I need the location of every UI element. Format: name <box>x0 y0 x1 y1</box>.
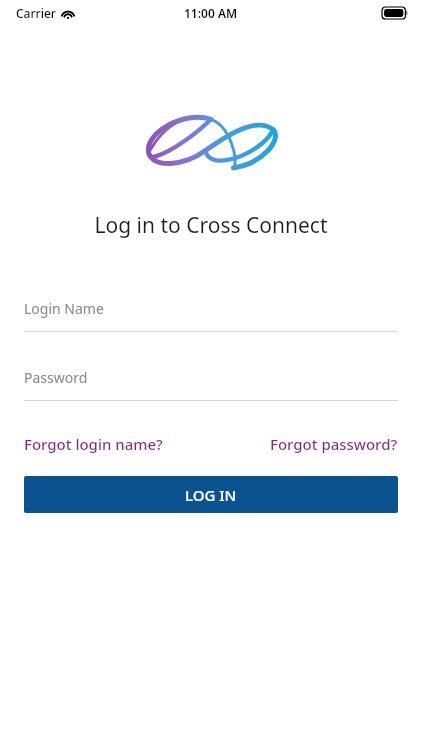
button[interactable]: LOG IN <box>24 476 398 513</box>
staticText: Login Name <box>24 299 104 318</box>
staticText: Forgot login name? <box>24 434 163 454</box>
staticText: Carrier <box>16 5 56 21</box>
staticText: LOG IN <box>185 485 237 505</box>
staticText: Password <box>24 368 88 387</box>
button[interactable]: Login Name <box>24 299 398 332</box>
staticText: 11:00 AM <box>184 5 238 21</box>
button[interactable]: Forgot login name? <box>24 434 163 454</box>
button[interactable]: Password <box>24 368 398 401</box>
button[interactable]: Forgot password? <box>270 434 398 454</box>
staticText: Log in to Cross Connect <box>0 211 422 240</box>
staticText: Forgot password? <box>270 434 398 454</box>
other: Cross Connect logo <box>141 110 281 168</box>
